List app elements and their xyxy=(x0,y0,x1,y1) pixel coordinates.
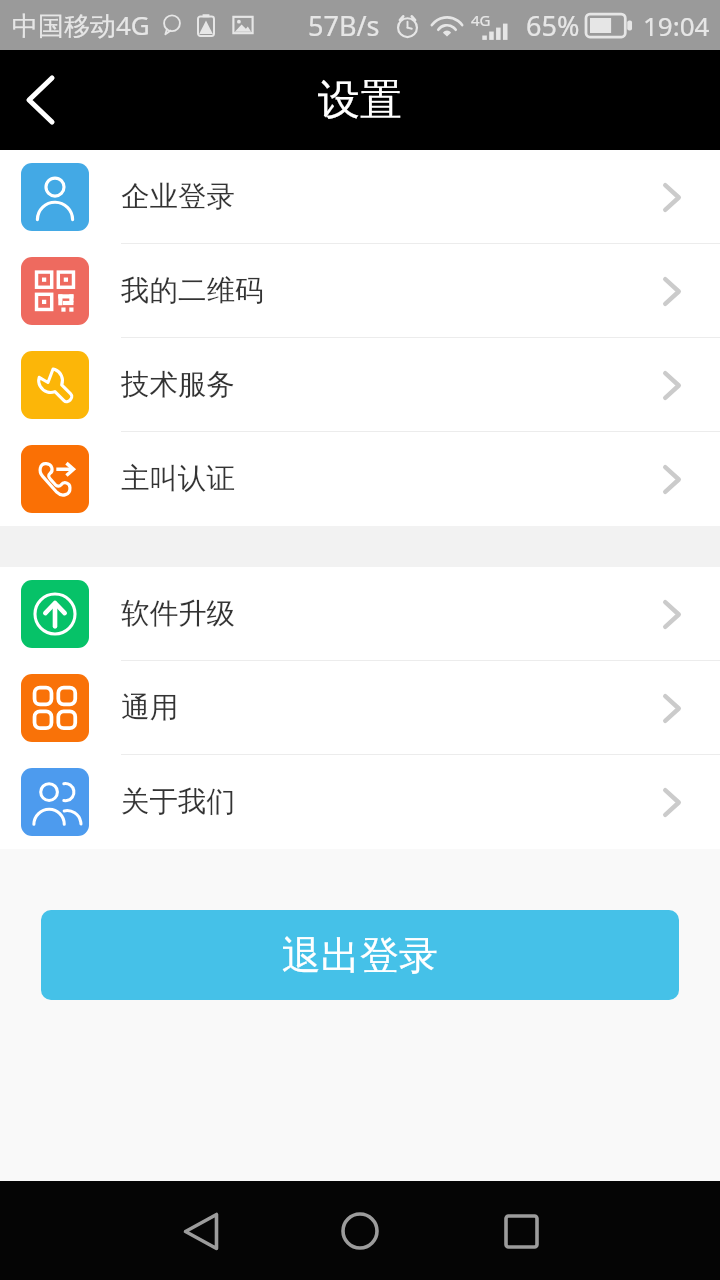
button[interactable]: 退出登录 xyxy=(41,910,679,1000)
staticText: 我的二维码 xyxy=(121,273,264,309)
staticText: 软件升级 xyxy=(121,596,235,632)
button[interactable]: 主叫认证 xyxy=(0,432,720,526)
button[interactable]: 我的二维码 xyxy=(0,244,720,338)
staticText: 技术服务 xyxy=(121,367,235,403)
button[interactable]: Back xyxy=(161,1191,241,1271)
staticText: 4G xyxy=(471,10,491,30)
button[interactable]: Home xyxy=(320,1191,400,1271)
staticText: 19:04 xyxy=(643,8,710,43)
button[interactable]: 技术服务 xyxy=(0,338,720,432)
button[interactable]: 关于我们 xyxy=(0,755,720,849)
button[interactable]: 企业登录 xyxy=(0,150,720,244)
staticText: 57B/s xyxy=(308,7,380,44)
staticText: 中国移动4G xyxy=(12,7,150,43)
button[interactable]: 通用 xyxy=(0,661,720,755)
staticText: 65% xyxy=(526,7,580,44)
staticText: 通用 xyxy=(121,690,178,726)
button[interactable]: Back xyxy=(0,60,80,140)
button[interactable]: 软件升级 xyxy=(0,567,720,661)
staticText: 关于我们 xyxy=(121,784,235,820)
staticText: 退出登录 xyxy=(282,931,438,980)
staticText: 设置 xyxy=(318,74,402,127)
staticText: 主叫认证 xyxy=(121,461,235,497)
button[interactable]: Recent apps xyxy=(481,1191,561,1271)
staticText: 企业登录 xyxy=(121,179,235,215)
